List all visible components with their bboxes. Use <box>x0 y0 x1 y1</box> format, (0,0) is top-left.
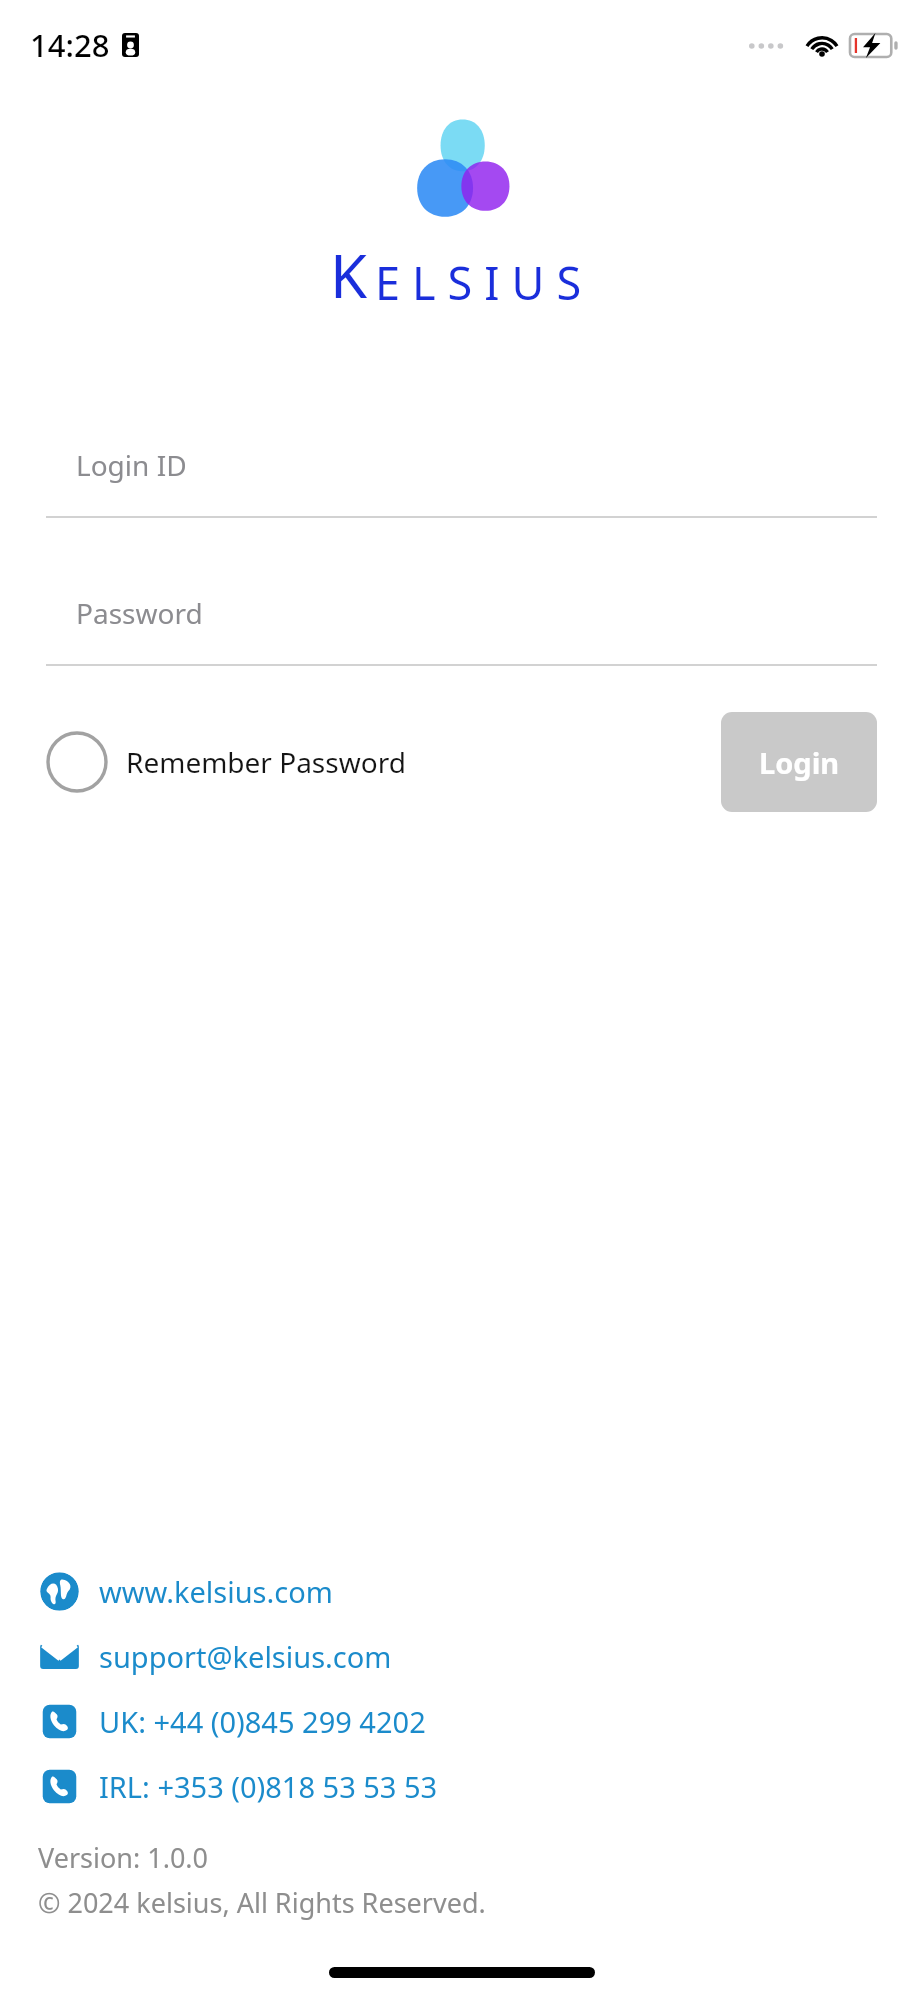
staticText: Version: 1.0.0 <box>38 1839 209 1876</box>
button[interactable]: Open website <box>38 1567 885 1616</box>
staticText: support@kelsius.com <box>99 1637 392 1676</box>
button[interactable]: Email support <box>38 1632 885 1681</box>
staticText: Remember Password <box>126 743 406 781</box>
other: Call <box>38 1700 81 1743</box>
button[interactable]: Password <box>46 594 877 666</box>
button[interactable]: Remember Password <box>46 723 406 801</box>
button[interactable]: Call <box>38 1697 885 1746</box>
other: Call <box>38 1765 81 1808</box>
button[interactable]: Login <box>721 712 877 812</box>
staticText: ELSIUS <box>375 252 594 313</box>
staticText: UK: +44 (0)845 299 4202 <box>99 1702 426 1741</box>
staticText: www.kelsius.com <box>99 1572 333 1611</box>
staticText: 14:28 <box>30 24 110 66</box>
staticText: K <box>330 234 375 316</box>
staticText: Password <box>76 594 203 632</box>
button[interactable]: Call <box>38 1762 885 1811</box>
staticText: IRL: +353 (0)818 53 53 53 <box>99 1767 438 1806</box>
other: Open website <box>38 1570 81 1613</box>
button[interactable]: Login ID <box>46 446 877 518</box>
staticText: Login <box>759 743 840 782</box>
staticText: © 2024 kelsius, All Rights Reserved. <box>38 1884 486 1921</box>
staticText: Login ID <box>76 446 187 484</box>
other: Email support <box>38 1635 81 1678</box>
